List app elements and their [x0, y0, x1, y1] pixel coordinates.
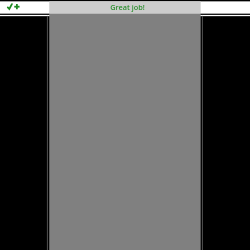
button[interactable]: Add task: [0, 1, 49, 14]
button[interactable]: Great job!: [50, 1, 200, 14]
staticText: Great job!: [110, 2, 145, 12]
